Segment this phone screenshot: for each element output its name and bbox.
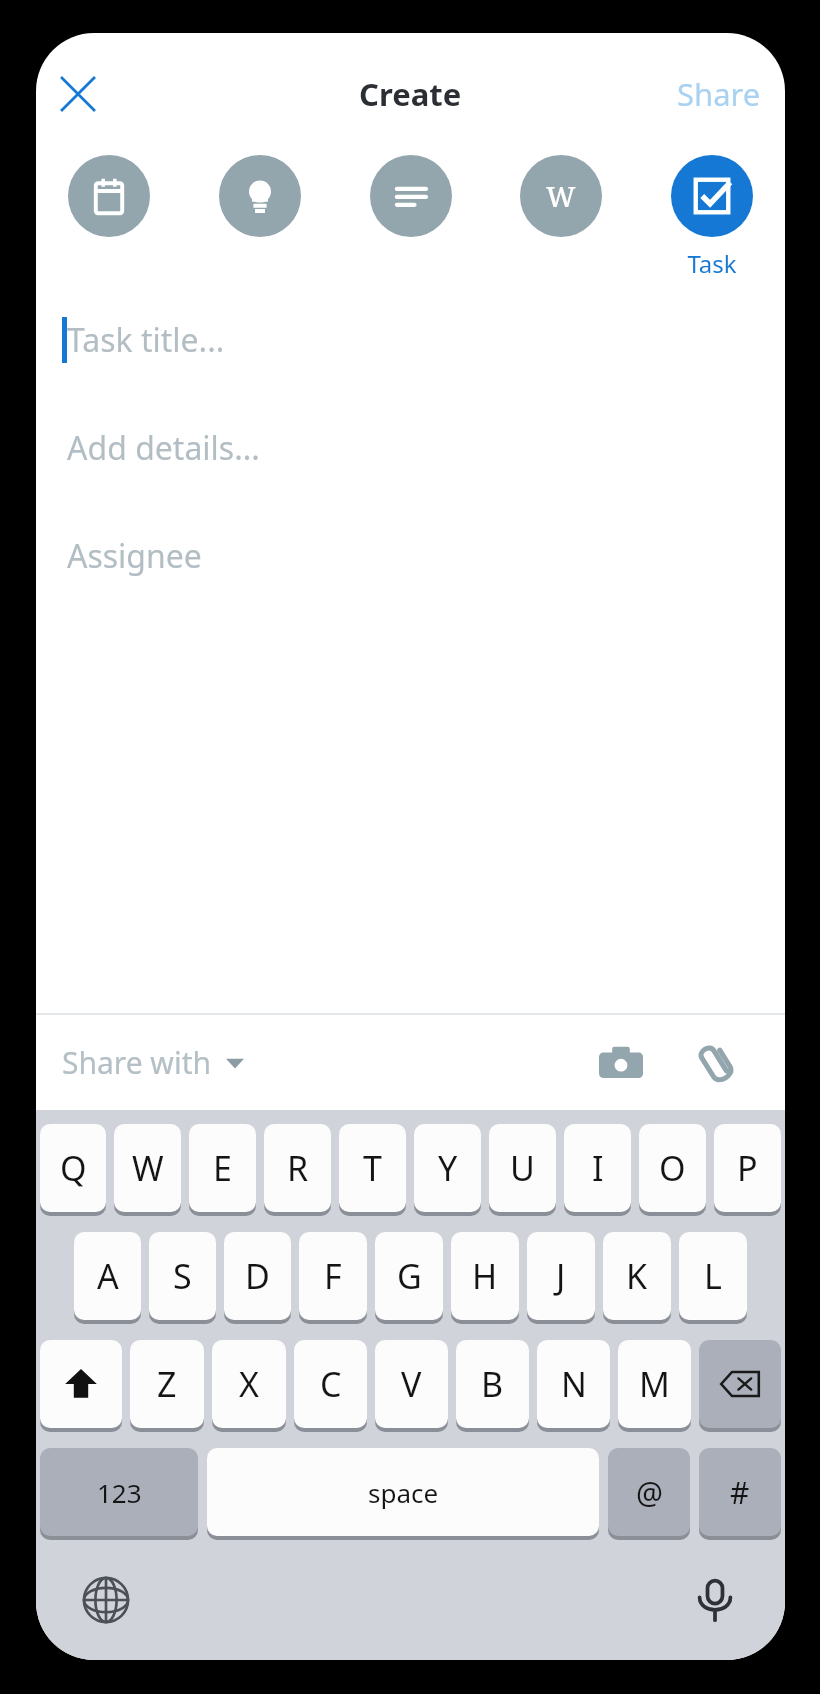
button[interactable]: M	[618, 1340, 691, 1428]
staticText: F	[324, 1253, 342, 1299]
button[interactable]: K	[603, 1232, 671, 1320]
button[interactable]: Assignee	[36, 524, 785, 588]
button[interactable]: T	[339, 1124, 406, 1212]
button[interactable]: Camera	[583, 1025, 659, 1101]
button[interactable]: N	[537, 1340, 610, 1428]
staticText: #	[730, 1472, 750, 1513]
staticText: U	[510, 1145, 535, 1191]
staticText: K	[626, 1253, 648, 1299]
staticText: L	[704, 1253, 722, 1299]
button[interactable]: O	[639, 1124, 706, 1212]
button[interactable]: Shift	[40, 1340, 122, 1428]
staticText: T	[363, 1145, 382, 1191]
staticText: E	[213, 1145, 232, 1191]
button[interactable]: Task title...	[36, 308, 785, 372]
button[interactable]: X	[212, 1340, 286, 1428]
button[interactable]: Create type	[352, 155, 470, 237]
button[interactable]: Create type	[50, 155, 168, 237]
staticText: Y	[438, 1145, 458, 1191]
staticText: H	[472, 1253, 498, 1299]
button[interactable]: R	[264, 1124, 331, 1212]
staticText: W	[546, 177, 576, 215]
button[interactable]: B	[456, 1340, 529, 1428]
staticText: Share with	[62, 1042, 212, 1083]
button[interactable]: V	[375, 1340, 448, 1428]
button[interactable]: H	[451, 1232, 519, 1320]
button[interactable]: J	[527, 1232, 595, 1320]
button[interactable]: 123	[40, 1448, 198, 1536]
staticText: C	[320, 1361, 342, 1407]
button[interactable]: Change language	[66, 1560, 146, 1640]
button[interactable]: #	[699, 1448, 781, 1536]
button[interactable]: Attach file	[681, 1025, 757, 1101]
button[interactable]: Share with	[54, 1036, 252, 1089]
staticText: 123	[97, 1475, 142, 1510]
button[interactable]: @	[608, 1448, 690, 1536]
button[interactable]: S	[149, 1232, 216, 1320]
staticText: M	[639, 1361, 670, 1407]
staticText: space	[368, 1475, 439, 1510]
staticText: Assignee	[67, 534, 202, 578]
staticText: D	[245, 1253, 270, 1299]
button[interactable]: Create type	[201, 155, 319, 237]
staticText: @	[636, 1472, 663, 1513]
button[interactable]: C	[294, 1340, 367, 1428]
button[interactable]: A	[74, 1232, 141, 1320]
button[interactable]: Share	[671, 67, 767, 121]
staticText: G	[397, 1253, 422, 1299]
button[interactable]: U	[489, 1124, 556, 1212]
staticText: W	[132, 1145, 164, 1191]
staticText: Task title...	[67, 318, 225, 362]
staticText: Add details...	[67, 426, 260, 470]
button[interactable]: Add details...	[36, 416, 785, 480]
button[interactable]: Voice input	[675, 1560, 755, 1640]
button[interactable]: P	[714, 1124, 781, 1212]
button[interactable]: space	[207, 1448, 599, 1536]
button[interactable]: I	[564, 1124, 631, 1212]
button[interactable]: Z	[130, 1340, 204, 1428]
button[interactable]: Task	[653, 155, 771, 280]
button[interactable]: G	[375, 1232, 443, 1320]
staticText: Q	[60, 1145, 87, 1191]
staticText: J	[556, 1253, 566, 1299]
button[interactable]: W	[114, 1124, 181, 1212]
staticText: R	[287, 1145, 309, 1191]
staticText: Task	[687, 247, 737, 280]
staticText: B	[481, 1361, 504, 1407]
staticText: Z	[157, 1361, 177, 1407]
button[interactable]: Y	[414, 1124, 481, 1212]
button[interactable]: L	[679, 1232, 747, 1320]
button[interactable]: Close	[42, 58, 114, 130]
button[interactable]: Create type	[502, 155, 620, 237]
staticText: X	[239, 1361, 259, 1407]
staticText: O	[659, 1145, 686, 1191]
button[interactable]: Q	[40, 1124, 106, 1212]
staticText: I	[592, 1145, 604, 1191]
button[interactable]: F	[299, 1232, 367, 1320]
button[interactable]: Backspace	[699, 1340, 781, 1428]
staticText: Share	[677, 73, 761, 115]
staticText: N	[561, 1361, 587, 1407]
button[interactable]: E	[189, 1124, 256, 1212]
button[interactable]: D	[224, 1232, 291, 1320]
staticText: S	[173, 1253, 192, 1299]
staticText: P	[737, 1145, 758, 1191]
staticText: V	[401, 1361, 422, 1407]
staticText: Create	[359, 73, 462, 115]
staticText: A	[97, 1253, 119, 1299]
